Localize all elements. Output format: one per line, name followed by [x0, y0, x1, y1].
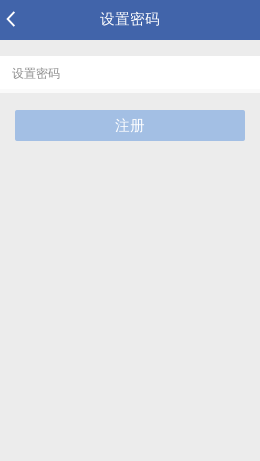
staticText: 设置密码	[12, 66, 60, 81]
button[interactable]: 注册	[15, 110, 245, 141]
staticText: 注册	[115, 116, 145, 134]
staticText: 设置密码	[100, 10, 160, 28]
button[interactable]: 设置密码	[0, 56, 260, 93]
button[interactable]: Back	[0, 0, 28, 40]
